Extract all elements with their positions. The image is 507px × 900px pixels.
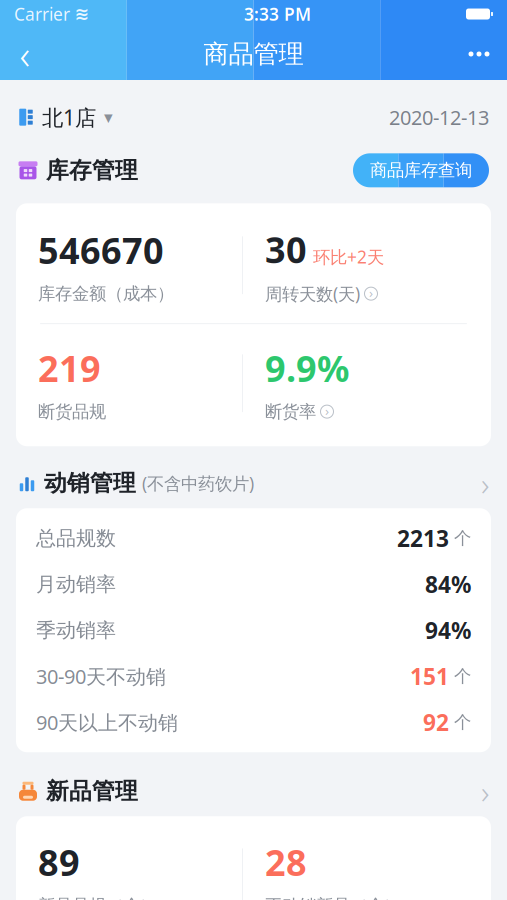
staticText: 商品库存查询 bbox=[370, 160, 472, 181]
staticText: 新品管理 bbox=[46, 777, 138, 805]
staticText: 周转天数(天) bbox=[265, 282, 360, 305]
staticText: 断货率 bbox=[265, 401, 316, 422]
staticText: 94% bbox=[425, 615, 471, 645]
staticText: 2213 bbox=[397, 523, 449, 553]
button[interactable]: 月动销率 bbox=[16, 561, 491, 607]
button[interactable]: 季动销率 bbox=[16, 607, 491, 653]
staticText: 新品品规（个） bbox=[38, 895, 157, 900]
staticText: 北1店 bbox=[42, 103, 96, 131]
staticText: 92 bbox=[423, 707, 449, 737]
staticText: 个 bbox=[449, 666, 471, 687]
staticText: 不动销新品（个） bbox=[265, 895, 401, 900]
staticText: 月动销率 bbox=[36, 572, 116, 597]
button[interactable]: 新品管理 bbox=[0, 776, 507, 806]
staticText: 89 bbox=[38, 838, 80, 886]
button[interactable]: More options bbox=[451, 32, 507, 76]
staticText: 总品规数 bbox=[36, 526, 116, 551]
button[interactable]: 北1店 bbox=[18, 97, 113, 137]
staticText: ≋ bbox=[74, 4, 89, 24]
staticText: 库存管理 bbox=[46, 156, 138, 184]
staticText: 环比+2天 bbox=[313, 245, 384, 268]
button[interactable]: 30-90天不动销 bbox=[16, 653, 491, 699]
staticText: ▾ bbox=[104, 107, 113, 127]
staticText: 库存金额（成本） bbox=[38, 283, 174, 304]
staticText: 84% bbox=[425, 569, 471, 599]
staticText: 30-90天不动销 bbox=[36, 663, 166, 690]
staticText: 546670 bbox=[38, 226, 164, 274]
staticText: › bbox=[325, 402, 329, 419]
staticText: › bbox=[481, 770, 489, 812]
staticText: 3:33 PM bbox=[244, 2, 311, 25]
staticText: 季动销率 bbox=[36, 618, 116, 643]
staticText: Carrier bbox=[14, 2, 70, 25]
button[interactable]: 90天以上不动销 bbox=[16, 699, 491, 745]
button[interactable]: 商品库存查询 bbox=[353, 153, 489, 187]
staticText: 断货品规 bbox=[38, 401, 106, 422]
staticText: 30 bbox=[265, 225, 307, 273]
staticText: › bbox=[369, 284, 373, 301]
staticText: 9.9% bbox=[265, 344, 349, 392]
staticText: › bbox=[481, 462, 489, 504]
staticText: 2020-12-13 bbox=[389, 104, 489, 130]
staticText: 219 bbox=[38, 344, 101, 392]
staticText: 商品管理 bbox=[203, 38, 303, 69]
button[interactable]: 动销管理 bbox=[0, 468, 507, 498]
staticText: 90天以上不动销 bbox=[36, 709, 178, 736]
staticText: 个 bbox=[449, 528, 471, 549]
staticText: 151 bbox=[410, 661, 449, 691]
staticText: 28 bbox=[265, 838, 307, 886]
staticText: ‹ bbox=[19, 27, 30, 80]
staticText: (不含中药饮片) bbox=[142, 472, 254, 495]
button[interactable]: 总品规数 bbox=[16, 515, 491, 561]
staticText: 动销管理 bbox=[44, 469, 136, 497]
button[interactable]: Back bbox=[0, 32, 50, 76]
staticText: 个 bbox=[449, 712, 471, 733]
